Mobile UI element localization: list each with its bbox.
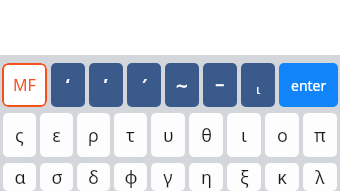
button[interactable]: Rough breathing	[51, 63, 85, 107]
staticText: ο	[277, 123, 288, 148]
button[interactable]: Circumflex accent	[165, 63, 199, 107]
button[interactable]: θ	[189, 113, 223, 157]
staticText: ε	[52, 123, 61, 148]
button[interactable]: ο	[265, 113, 299, 157]
button[interactable]: Acute accent	[127, 63, 161, 107]
button[interactable]: υ	[151, 113, 185, 157]
staticText: −	[215, 74, 225, 96]
staticText: ξ	[240, 165, 249, 190]
staticText: φ	[124, 165, 138, 190]
button[interactable]: π	[303, 113, 337, 157]
staticText: α	[14, 165, 26, 190]
staticText: ι	[241, 123, 247, 148]
staticText: enter	[291, 76, 327, 95]
staticText: σ	[51, 165, 63, 190]
button[interactable]: ι	[227, 113, 261, 157]
button[interactable]: ε	[40, 113, 73, 157]
button[interactable]: λ	[303, 163, 337, 191]
staticText: π	[314, 123, 326, 148]
button[interactable]: ξ	[227, 163, 261, 191]
staticText: ’	[104, 74, 108, 96]
button[interactable]: α	[3, 163, 36, 191]
staticText: ρ	[88, 123, 99, 148]
staticText: ι	[256, 80, 261, 98]
staticText: λ	[315, 165, 325, 190]
button[interactable]: Macron	[203, 63, 237, 107]
button[interactable]: ρ	[77, 113, 110, 157]
button[interactable]: σ	[40, 163, 73, 191]
staticText: η	[201, 165, 212, 190]
button[interactable]: Iota subscript	[241, 63, 275, 107]
button[interactable]: τ	[114, 113, 147, 157]
staticText: ς	[15, 123, 24, 148]
button[interactable]: δ	[77, 163, 110, 191]
button[interactable]: η	[189, 163, 223, 191]
button[interactable]: ς	[3, 113, 36, 157]
button[interactable]: φ	[114, 163, 147, 191]
button[interactable]: γ	[151, 163, 185, 191]
staticText: θ	[201, 123, 212, 148]
button[interactable]: enter	[279, 63, 338, 107]
staticText: κ	[277, 165, 287, 190]
staticText: ∼	[175, 76, 189, 95]
staticText: τ	[126, 123, 135, 148]
staticText: MF	[13, 74, 36, 96]
staticText: ′	[142, 74, 147, 96]
button[interactable]: MF	[2, 63, 47, 107]
button[interactable]: κ	[265, 163, 299, 191]
staticText: υ	[163, 123, 174, 148]
staticText: ‘	[66, 74, 70, 96]
staticText: δ	[88, 165, 99, 190]
button[interactable]: Smooth breathing	[89, 63, 123, 107]
staticText: γ	[163, 165, 173, 190]
